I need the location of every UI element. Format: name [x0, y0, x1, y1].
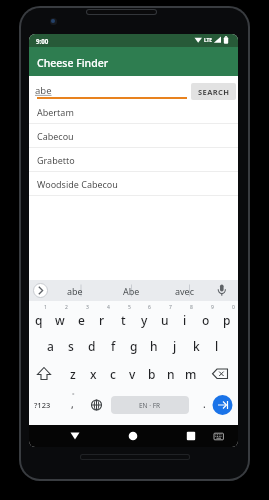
- button[interactable]: [34, 365, 56, 383]
- button[interactable]: [86, 396, 107, 414]
- staticText: q: [35, 312, 43, 328]
- button[interactable]: x: [83, 366, 103, 382]
- button[interactable]: j: [165, 338, 185, 354]
- staticText: u: [161, 312, 169, 328]
- staticText: EN · FR: [139, 401, 161, 410]
- staticText: l: [215, 338, 219, 354]
- staticText: o: [202, 312, 210, 328]
- staticText: abe: [35, 84, 52, 97]
- button[interactable]: w: [50, 312, 70, 328]
- staticText: t: [121, 312, 126, 328]
- button[interactable]: [98, 425, 168, 447]
- button[interactable]: q: [29, 312, 49, 328]
- staticText: Grabetto: [37, 154, 75, 166]
- staticText: Abe: [123, 285, 140, 297]
- staticText: i: [183, 312, 187, 328]
- button[interactable]: y: [134, 312, 154, 328]
- staticText: v: [129, 366, 136, 382]
- button[interactable]: i: [175, 312, 195, 328]
- button[interactable]: g: [124, 338, 144, 354]
- button[interactable]: [209, 365, 233, 383]
- staticText: 2: [65, 304, 68, 311]
- button[interactable]: k: [186, 338, 206, 354]
- button[interactable]: [33, 78, 188, 100]
- staticText: Abertam: [37, 106, 74, 118]
- button[interactable]: z: [63, 366, 83, 382]
- button[interactable]: [213, 395, 233, 415]
- button[interactable]: Woodside Cabecou: [29, 172, 238, 195]
- button[interactable]: h: [144, 338, 164, 354]
- button[interactable]: [111, 396, 189, 414]
- staticText: p: [223, 312, 231, 328]
- staticText: LTE: [204, 37, 213, 44]
- staticText: x: [90, 366, 97, 382]
- button[interactable]: Abertam: [29, 100, 238, 123]
- button[interactable]: ,: [67, 397, 77, 411]
- button[interactable]: .: [199, 397, 209, 411]
- staticText: 3: [86, 304, 89, 311]
- staticText: ,: [71, 397, 74, 411]
- staticText: Cabecou: [37, 130, 74, 142]
- button[interactable]: t: [113, 312, 133, 328]
- button[interactable]: s: [61, 338, 81, 354]
- button[interactable]: avec: [165, 284, 205, 298]
- staticText: z: [70, 366, 76, 382]
- button[interactable]: m: [181, 366, 201, 382]
- staticText: 4: [107, 304, 110, 311]
- staticText: 8: [190, 304, 193, 311]
- staticText: b: [148, 366, 156, 382]
- button[interactable]: ?123: [29, 398, 55, 412]
- staticText: k: [193, 338, 200, 354]
- button[interactable]: u: [155, 312, 175, 328]
- staticText: c: [110, 366, 116, 382]
- staticText: g: [130, 338, 138, 354]
- staticText: Woodside Cabecou: [37, 178, 118, 190]
- staticText: a: [47, 338, 54, 354]
- button[interactable]: l: [207, 338, 227, 354]
- button[interactable]: a: [40, 338, 60, 354]
- staticText: SEARCH: [198, 87, 230, 97]
- button[interactable]: [168, 425, 238, 447]
- staticText: abe: [67, 285, 83, 297]
- staticText: 0: [232, 304, 235, 311]
- button[interactable]: d: [82, 338, 102, 354]
- staticText: m: [185, 366, 197, 382]
- staticText: 5: [128, 304, 131, 311]
- staticText: 9: [211, 304, 214, 311]
- button[interactable]: c: [103, 366, 123, 382]
- staticText: w: [55, 312, 65, 328]
- staticText: s: [68, 338, 74, 354]
- staticText: Cheese Finder: [37, 56, 109, 70]
- button[interactable]: r: [92, 312, 112, 328]
- button[interactable]: [29, 425, 98, 447]
- staticText: j: [173, 338, 177, 354]
- button[interactable]: Abe: [111, 284, 151, 298]
- button[interactable]: b: [142, 366, 162, 382]
- button[interactable]: e: [71, 312, 91, 328]
- button[interactable]: n: [161, 366, 181, 382]
- staticText: ?123: [34, 400, 51, 410]
- staticText: 7: [169, 304, 172, 311]
- staticText: f: [111, 338, 116, 354]
- staticText: °: [72, 391, 75, 399]
- staticText: n: [167, 366, 175, 382]
- button[interactable]: abe: [55, 284, 95, 298]
- button[interactable]: SEARCH: [191, 83, 236, 100]
- staticText: r: [99, 312, 105, 328]
- button[interactable]: f: [103, 338, 123, 354]
- staticText: d: [88, 338, 96, 354]
- staticText: e: [78, 312, 85, 328]
- staticText: 1: [44, 304, 47, 311]
- button[interactable]: o: [196, 312, 216, 328]
- button[interactable]: v: [122, 366, 142, 382]
- staticText: y: [141, 312, 148, 328]
- staticText: avec: [175, 285, 195, 297]
- button[interactable]: p: [217, 312, 237, 328]
- staticText: .: [203, 397, 206, 411]
- button[interactable]: Cabecou: [29, 124, 238, 147]
- button[interactable]: Grabetto: [29, 148, 238, 171]
- staticText: 6: [148, 304, 151, 311]
- staticText: h: [150, 338, 158, 354]
- staticText: 9:00: [36, 37, 49, 45]
